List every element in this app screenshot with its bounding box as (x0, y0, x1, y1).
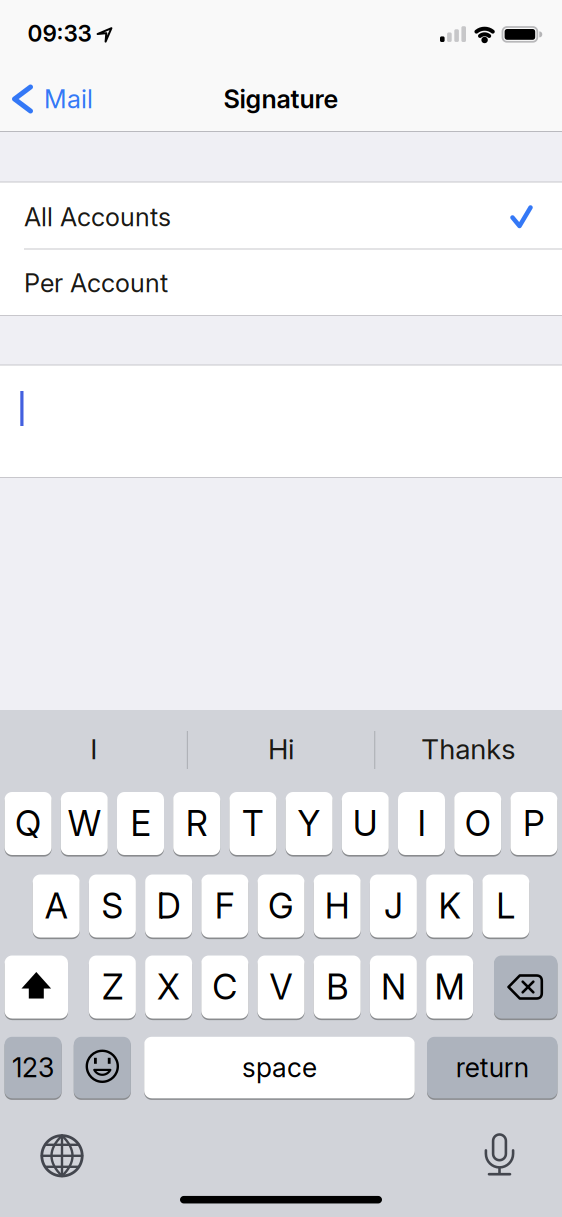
button[interactable]: 123 (5, 1036, 62, 1099)
button[interactable]: R (173, 791, 220, 856)
staticText: F (215, 886, 235, 926)
staticText: Q (15, 803, 41, 844)
button[interactable]: Per Account (0, 249, 562, 315)
staticText: C (212, 967, 237, 1007)
staticText: O (465, 803, 491, 844)
button[interactable]: P (510, 791, 557, 856)
button[interactable]: Hi (188, 710, 374, 788)
staticText: All Accounts (24, 202, 171, 232)
staticText: I (90, 732, 97, 765)
button[interactable]: Q (5, 791, 52, 856)
button[interactable]: D (145, 873, 192, 938)
staticText: P (523, 803, 545, 844)
staticText: 123 (12, 1052, 54, 1083)
staticText: Z (102, 967, 123, 1007)
button[interactable]: A (33, 873, 80, 938)
button[interactable]: Dictate (471, 1124, 527, 1186)
staticText: K (439, 886, 461, 926)
button[interactable]: I (1, 710, 187, 788)
staticText: X (157, 967, 180, 1007)
button[interactable]: I (398, 791, 445, 856)
button[interactable]: B (314, 954, 361, 1019)
staticText: Mail (44, 84, 93, 114)
button[interactable]: Signature text field (0, 365, 562, 477)
button[interactable]: T (229, 791, 276, 856)
staticText: U (353, 803, 378, 844)
staticText: E (130, 803, 150, 844)
button[interactable]: E (117, 791, 164, 856)
button[interactable]: S (89, 873, 136, 938)
staticText: return (456, 1052, 529, 1083)
staticText: L (496, 886, 515, 926)
button[interactable]: L (482, 873, 529, 938)
staticText: N (381, 967, 406, 1007)
button[interactable]: Emoji (74, 1036, 131, 1099)
button[interactable]: Next keyboard (31, 1125, 93, 1187)
staticText: R (186, 803, 208, 844)
staticText: I (417, 803, 425, 844)
staticText: D (157, 886, 181, 926)
button[interactable]: N (370, 954, 417, 1019)
staticText: V (269, 967, 292, 1007)
button[interactable]: X (145, 954, 192, 1019)
button[interactable]: All Accounts (0, 182, 562, 248)
staticText: T (242, 803, 264, 844)
staticText: Thanks (421, 732, 515, 765)
button[interactable]: Delete (494, 954, 557, 1019)
button[interactable]: space (144, 1036, 415, 1099)
staticText: S (101, 886, 123, 926)
button[interactable]: Shift (5, 954, 68, 1019)
staticText: space (242, 1052, 317, 1083)
button[interactable]: Z (89, 954, 136, 1019)
button[interactable]: Thanks (375, 710, 561, 788)
staticText: B (326, 967, 348, 1007)
staticText: A (45, 886, 68, 926)
staticText: 09:33 (27, 20, 91, 47)
staticText: M (435, 967, 465, 1007)
staticText: G (268, 886, 294, 926)
staticText: W (68, 803, 101, 844)
button[interactable]: M (426, 954, 473, 1019)
button[interactable]: K (426, 873, 473, 938)
staticText: Per Account (24, 268, 168, 298)
button[interactable]: W (61, 791, 108, 856)
button[interactable]: Back to Mail (7, 83, 141, 115)
button[interactable]: U (342, 791, 389, 856)
button[interactable]: F (201, 873, 248, 938)
staticText: J (384, 886, 403, 926)
button[interactable]: return (427, 1036, 557, 1099)
button[interactable]: Y (286, 791, 333, 856)
staticText: Signature (223, 84, 338, 114)
button[interactable]: O (454, 791, 501, 856)
staticText: H (325, 886, 350, 926)
staticText: Hi (268, 732, 294, 765)
button[interactable]: V (257, 954, 304, 1019)
button[interactable]: C (201, 954, 248, 1019)
button[interactable]: H (314, 873, 361, 938)
staticText: Y (298, 803, 321, 844)
button[interactable]: G (257, 873, 304, 938)
button[interactable]: J (370, 873, 417, 938)
